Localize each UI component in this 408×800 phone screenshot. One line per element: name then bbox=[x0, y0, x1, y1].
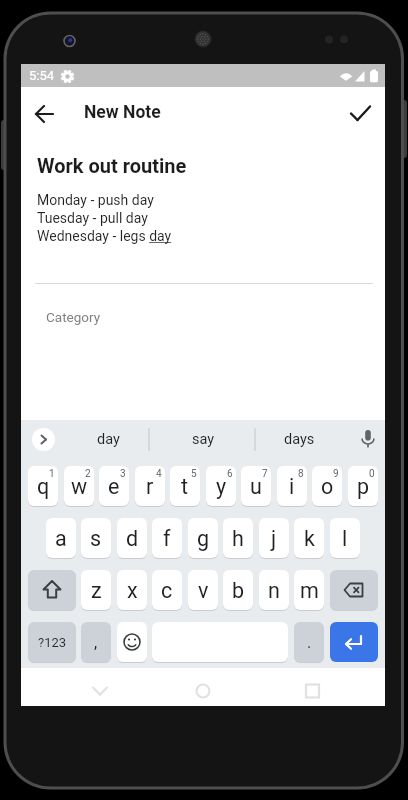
button[interactable]: p bbox=[348, 466, 378, 506]
button[interactable]: b bbox=[223, 570, 253, 610]
staticText: o bbox=[321, 474, 334, 499]
button[interactable] bbox=[330, 570, 378, 610]
button[interactable]: n bbox=[259, 570, 289, 610]
button[interactable]: ?123 bbox=[28, 622, 76, 662]
button[interactable]: j bbox=[259, 518, 289, 558]
staticText: 9 bbox=[333, 468, 339, 480]
button[interactable]: . bbox=[294, 622, 324, 662]
staticText: q bbox=[37, 474, 50, 499]
staticText: Work out routine bbox=[37, 154, 187, 177]
button[interactable]: k bbox=[294, 518, 324, 558]
staticText: 6 bbox=[227, 468, 233, 480]
button[interactable]: e bbox=[99, 466, 129, 506]
button[interactable]: i bbox=[277, 466, 307, 506]
staticText: days bbox=[284, 431, 315, 448]
button[interactable]: y bbox=[206, 466, 236, 506]
button[interactable]: v bbox=[188, 570, 218, 610]
staticText: 1 bbox=[49, 468, 55, 480]
staticText: e bbox=[108, 474, 120, 499]
button[interactable]: q bbox=[28, 466, 58, 506]
staticText: w bbox=[71, 474, 88, 499]
button[interactable] bbox=[292, 671, 332, 705]
staticText: i bbox=[289, 474, 295, 499]
staticText: ?123 bbox=[38, 635, 67, 650]
button[interactable] bbox=[117, 622, 147, 662]
button[interactable]: m bbox=[294, 570, 324, 610]
staticText: c bbox=[161, 578, 173, 603]
staticText: a bbox=[55, 526, 67, 551]
button[interactable]: d bbox=[117, 518, 147, 558]
button[interactable]: u bbox=[241, 466, 271, 506]
button[interactable]: r bbox=[135, 466, 165, 506]
staticText: y bbox=[216, 474, 227, 499]
staticText: 0 bbox=[369, 468, 375, 480]
button[interactable]: a bbox=[46, 518, 76, 558]
staticText: t bbox=[181, 474, 189, 499]
staticText: Category bbox=[46, 309, 101, 325]
staticText: Monday - push day Tuesday - pull day Wed… bbox=[37, 192, 172, 245]
staticText: . bbox=[307, 633, 312, 652]
button[interactable]: x bbox=[117, 570, 147, 610]
staticText: k bbox=[304, 526, 315, 551]
button[interactable]: , bbox=[81, 622, 111, 662]
button[interactable] bbox=[351, 422, 385, 457]
staticText: z bbox=[91, 578, 102, 603]
staticText: s bbox=[90, 526, 102, 551]
button[interactable]: day bbox=[75, 420, 141, 459]
button[interactable]: c bbox=[152, 570, 182, 610]
staticText: l bbox=[342, 526, 348, 551]
staticText: 2 bbox=[85, 468, 91, 480]
staticText: n bbox=[268, 578, 280, 603]
staticText: say bbox=[192, 431, 215, 448]
button[interactable]: days bbox=[266, 420, 332, 459]
staticText: 5:54 bbox=[29, 68, 55, 83]
staticText: , bbox=[94, 633, 98, 652]
staticText: u bbox=[250, 474, 262, 499]
button[interactable]: t bbox=[170, 466, 200, 506]
button[interactable]: g bbox=[188, 518, 218, 558]
button[interactable]: f bbox=[152, 518, 182, 558]
button[interactable]: z bbox=[81, 570, 111, 610]
button[interactable] bbox=[32, 428, 55, 451]
button[interactable] bbox=[183, 671, 223, 705]
button[interactable] bbox=[80, 671, 120, 705]
staticText: 8 bbox=[298, 468, 304, 480]
button[interactable]: o bbox=[312, 466, 342, 506]
staticText: b bbox=[232, 578, 245, 603]
button[interactable] bbox=[342, 96, 378, 130]
staticText: 5 bbox=[191, 468, 197, 480]
staticText: 7 bbox=[262, 468, 268, 480]
button[interactable]: h bbox=[223, 518, 253, 558]
staticText: x bbox=[127, 578, 138, 603]
staticText: h bbox=[232, 526, 244, 551]
staticText: f bbox=[163, 526, 171, 551]
button[interactable]: w bbox=[64, 466, 94, 506]
staticText: m bbox=[300, 578, 319, 603]
staticText: day bbox=[97, 431, 120, 448]
button[interactable]: l bbox=[330, 518, 360, 558]
button[interactable]: say bbox=[170, 420, 236, 459]
staticText: j bbox=[271, 526, 277, 551]
staticText: d bbox=[126, 526, 139, 551]
staticText: New Note bbox=[84, 102, 161, 123]
staticText: v bbox=[198, 578, 209, 603]
button[interactable] bbox=[330, 622, 378, 662]
button[interactable] bbox=[28, 570, 76, 610]
staticText: 4 bbox=[156, 468, 162, 480]
staticText: p bbox=[357, 474, 370, 499]
button[interactable] bbox=[24, 97, 65, 131]
staticText: 3 bbox=[120, 468, 126, 480]
button[interactable]: s bbox=[81, 518, 111, 558]
staticText: g bbox=[197, 526, 210, 551]
staticText: r bbox=[146, 474, 154, 499]
